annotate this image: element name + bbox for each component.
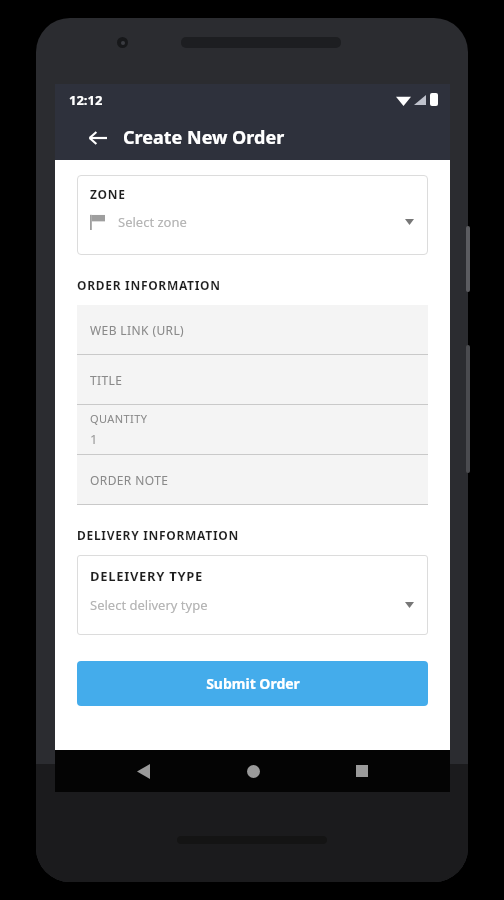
staticText: ZONE [90, 186, 126, 202]
staticText: DELEIVERY TYPE [90, 567, 203, 585]
button[interactable]: Submit Order [77, 661, 428, 706]
button[interactable]: Recent apps [340, 750, 384, 792]
staticText: WEB LINK (URL) [90, 322, 185, 338]
staticText: Select delivery type [90, 596, 208, 614]
button[interactable]: Back [121, 750, 165, 792]
staticText: ORDER INFORMATION [77, 277, 221, 293]
staticText: DELIVERY INFORMATION [77, 527, 239, 543]
staticText: 12:12 [69, 91, 103, 109]
button[interactable]: Back [85, 125, 111, 151]
button[interactable]: TITLE [77, 355, 428, 404]
button[interactable]: ORDER NOTE [77, 455, 428, 504]
button[interactable]: DELEIVERY TYPE [77, 555, 428, 635]
button[interactable]: Home [231, 750, 275, 792]
button[interactable]: QUANTITY [77, 405, 428, 454]
staticText: 1 [90, 430, 98, 448]
staticText: Select zone [118, 213, 187, 231]
staticText: Submit Order [206, 674, 300, 693]
button[interactable]: WEB LINK (URL) [77, 305, 428, 354]
staticText: TITLE [90, 372, 123, 388]
staticText: ORDER NOTE [90, 472, 169, 488]
button[interactable]: ZONE [77, 175, 428, 255]
staticText: Create New Order [123, 125, 285, 150]
staticText: QUANTITY [90, 411, 148, 426]
